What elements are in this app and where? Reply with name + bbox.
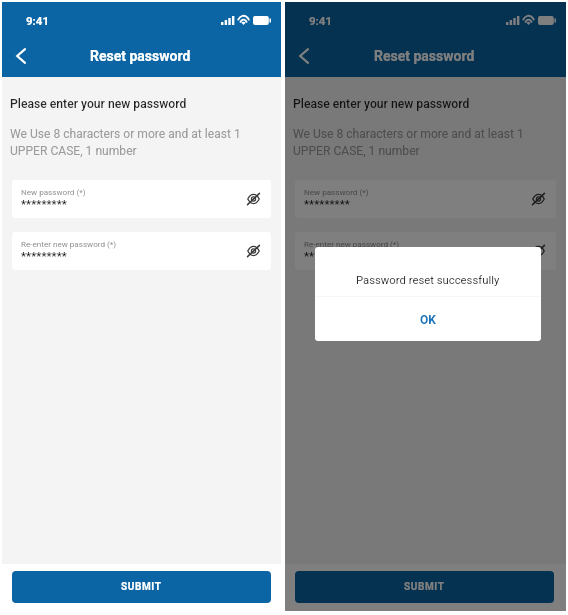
staticText: ********* [21, 198, 67, 211]
staticText: ********* [304, 198, 350, 211]
button[interactable]: Back [287, 39, 321, 73]
button[interactable]: Re-enter new password (*) [12, 232, 271, 270]
staticText: Re-enter new password (*) [304, 239, 400, 248]
staticText: New password (*) [21, 187, 86, 196]
button[interactable]: New password (*) [295, 180, 556, 218]
staticText: 9:41 [309, 14, 333, 27]
staticText: OK [420, 313, 436, 327]
button[interactable]: OK [315, 298, 541, 341]
staticText: ********* [21, 250, 67, 263]
staticText: SUBMIT [404, 581, 445, 593]
button[interactable]: New password (*) [12, 180, 271, 218]
staticText: We Use 8 characters or more and at least… [10, 127, 241, 158]
staticText: Password reset successfully [356, 274, 500, 287]
staticText: New password (*) [304, 187, 369, 196]
button[interactable]: Show password [526, 187, 550, 211]
button[interactable]: Show password [526, 239, 550, 263]
button[interactable]: Show password [241, 187, 265, 211]
staticText: ********* [304, 250, 350, 263]
button[interactable]: Show password [241, 239, 265, 263]
staticText: Reset password [374, 48, 475, 64]
button[interactable]: Back [4, 39, 38, 73]
staticText: 9:41 [26, 14, 50, 27]
staticText: Re-enter new password (*) [21, 239, 117, 248]
staticText: Reset password [90, 48, 191, 64]
staticText: SUBMIT [121, 581, 162, 593]
staticText: Please enter your new password [293, 97, 470, 111]
button[interactable]: SUBMIT [295, 571, 554, 603]
staticText: Please enter your new password [10, 97, 187, 111]
button[interactable]: Re-enter new password (*) [295, 232, 556, 270]
button[interactable]: SUBMIT [12, 571, 271, 603]
staticText: We Use 8 characters or more and at least… [293, 127, 524, 158]
